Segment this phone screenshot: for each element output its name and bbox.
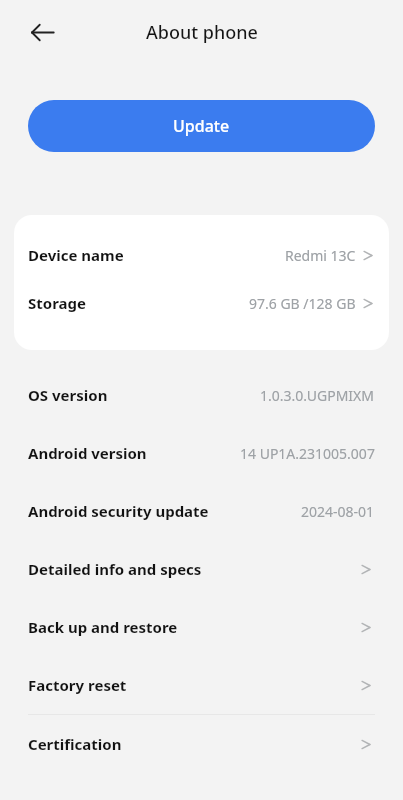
- staticText: Android version: [28, 443, 147, 463]
- staticText: About phone: [146, 20, 258, 45]
- staticText: 2024-08-01: [301, 502, 375, 521]
- staticText: Redmi 13C: [285, 246, 356, 265]
- staticText: Certification: [28, 734, 122, 754]
- button[interactable]: Update: [28, 100, 375, 152]
- staticText: 14 UP1A.231005.007: [240, 444, 375, 463]
- button[interactable]: OS version: [0, 366, 403, 424]
- staticText: OS version: [28, 385, 108, 405]
- button[interactable]: Detailed info and specs: [0, 540, 403, 598]
- button[interactable]: Android version: [0, 424, 403, 482]
- staticText: Factory reset: [28, 675, 127, 695]
- staticText: Android security update: [28, 501, 209, 521]
- button[interactable]: Factory reset: [0, 656, 403, 714]
- button[interactable]: Storage: [14, 279, 389, 327]
- staticText: 97.6 GB /128 GB: [249, 294, 356, 313]
- staticText: 1.0.3.0.UGPMIXM: [260, 386, 375, 405]
- button[interactable]: Android security update: [0, 482, 403, 540]
- button[interactable]: Back up and restore: [0, 598, 403, 656]
- button[interactable]: Certification: [0, 715, 403, 773]
- staticText: Update: [173, 115, 230, 137]
- staticText: Storage: [28, 293, 86, 313]
- staticText: Device name: [28, 245, 124, 265]
- staticText: Back up and restore: [28, 617, 178, 637]
- button[interactable]: Device name: [14, 231, 389, 279]
- staticText: Detailed info and specs: [28, 559, 202, 579]
- button[interactable]: Back: [18, 8, 66, 56]
